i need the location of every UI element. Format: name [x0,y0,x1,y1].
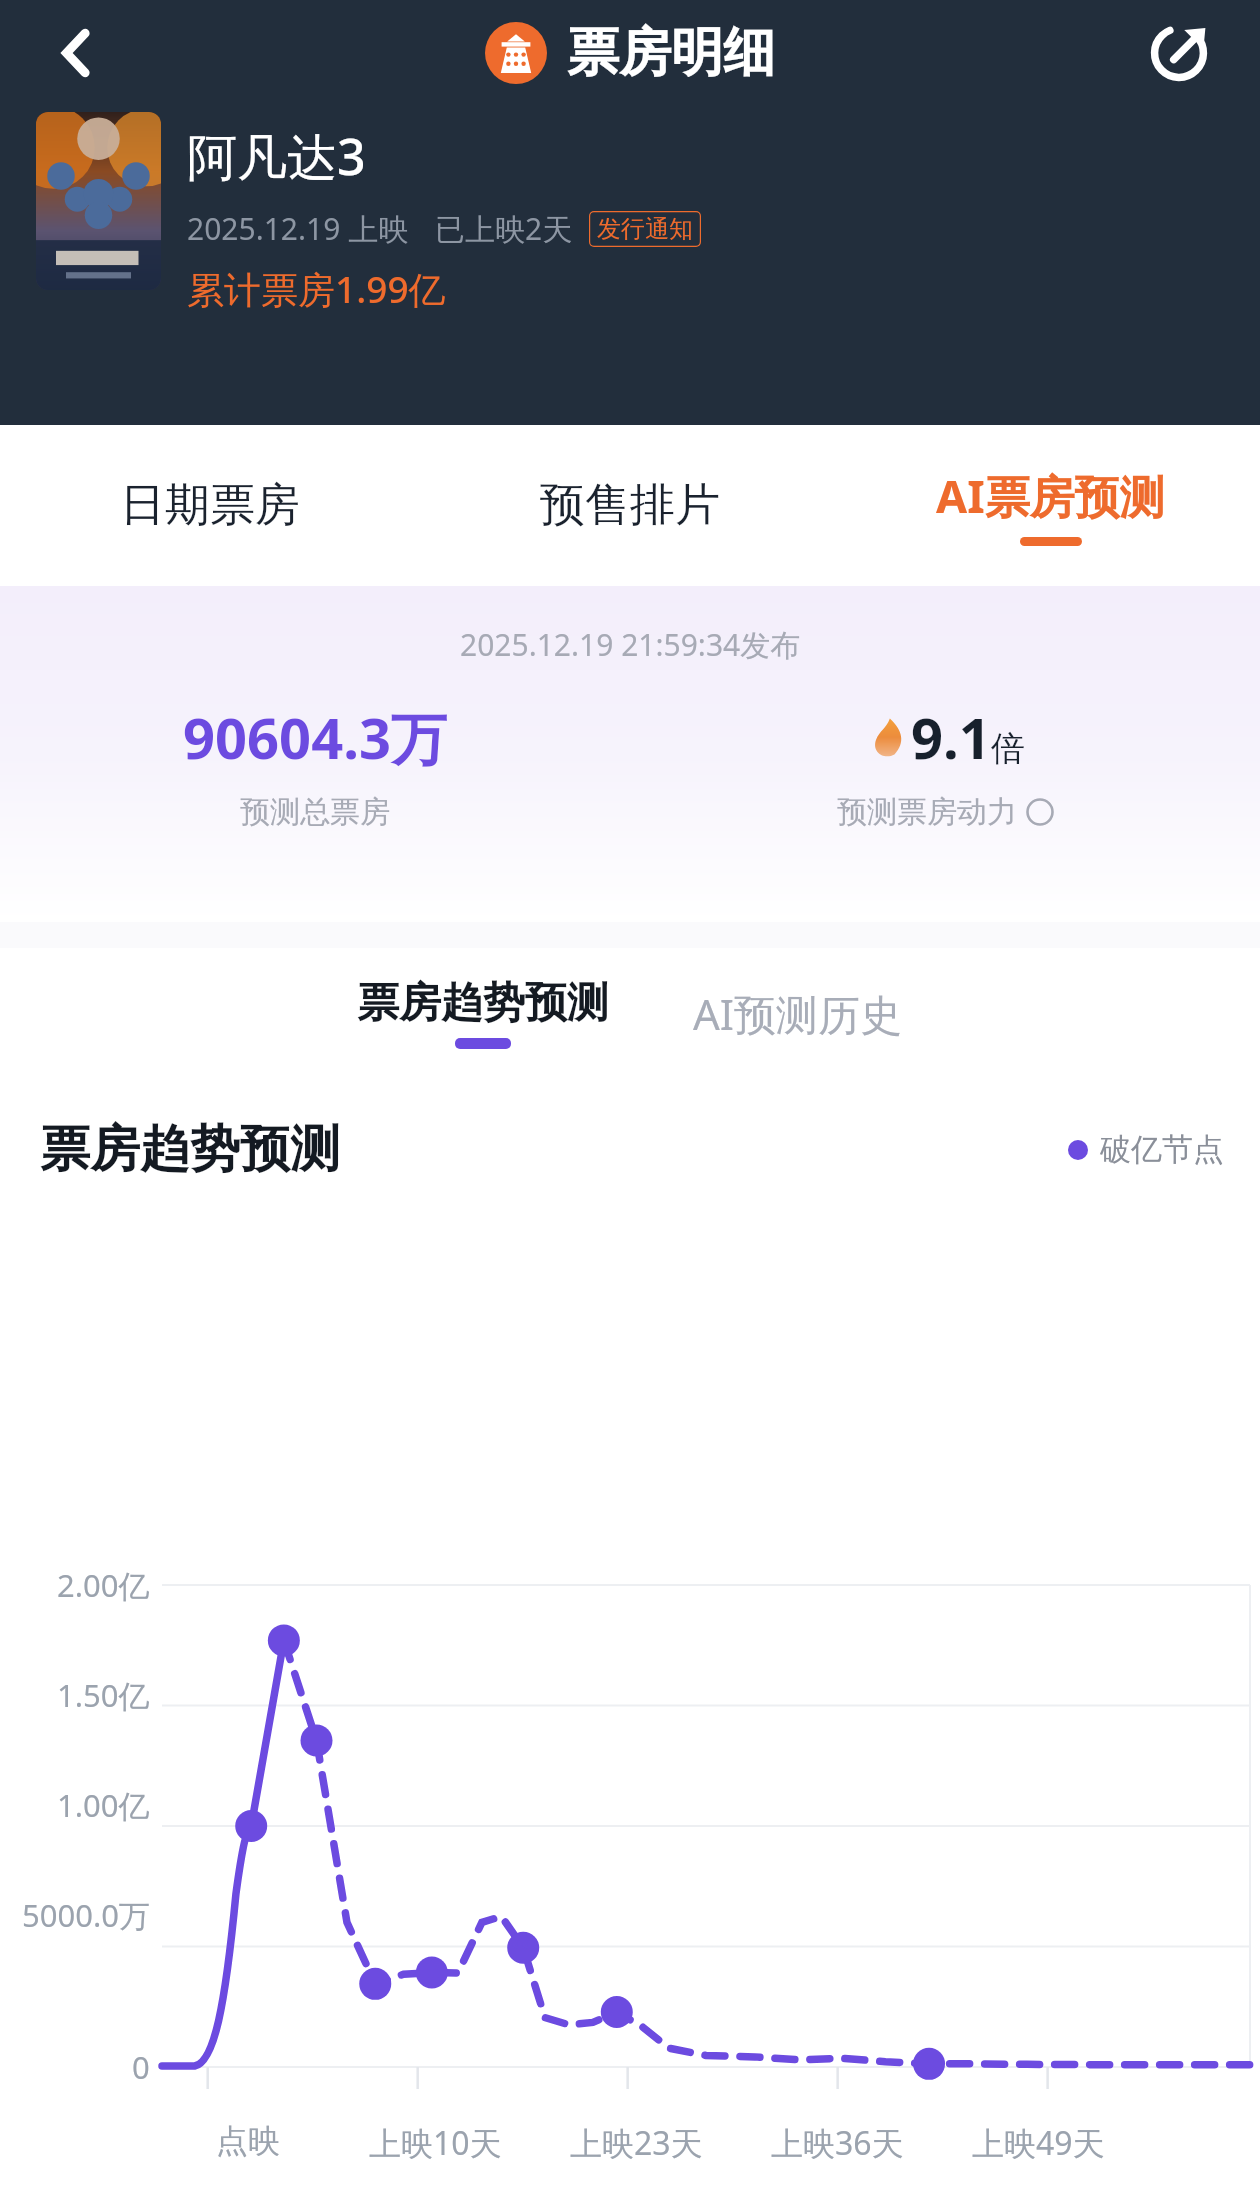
staticText: 90604.3万 [183,699,447,775]
staticText: 上映10天 [369,2121,502,2165]
button[interactable]: AI票房预测 [840,425,1260,586]
staticText: 日期票房 [120,477,300,534]
staticText: 票房趋势预测 [357,977,609,1030]
staticText: 预售排片 [540,477,720,534]
staticText: 2025.12.19 21:59:34发布 [460,624,801,665]
button[interactable]: 票房趋势预测 [343,969,623,1057]
staticText: AI预测历史 [693,985,903,1042]
staticText: 票房趋势预测 [40,1118,340,1181]
staticText: 5000.0万 [22,1894,150,1936]
staticText: 上映49天 [972,2121,1105,2165]
button[interactable]: Back [22,0,132,105]
staticText: 票房明细 [567,20,775,86]
staticText: 1.50亿 [57,1674,150,1716]
staticText: 上映36天 [771,2121,904,2165]
staticText: 倍 [991,727,1025,770]
button[interactable]: 发行通知 [597,214,693,244]
button[interactable]: 预售排片 [420,425,840,586]
staticText: 破亿节点 [1100,1130,1224,1169]
button[interactable]: AI预测历史 [679,977,917,1050]
staticText: 上映23天 [570,2121,703,2165]
staticText: 阿凡达3 [187,122,366,190]
staticText: 0 [132,2046,150,2088]
staticText: 点映 [216,2121,280,2161]
staticText: 1.00亿 [57,1784,150,1826]
staticText: 预测票房动力 [837,793,1017,831]
staticText: AI票房预测 [936,465,1165,526]
staticText: 2025.12.19 上映 [187,208,409,249]
button[interactable]: 破亿节点 [1068,1130,1224,1169]
staticText: 预测总票房 [240,793,390,831]
button[interactable]: Share [1124,0,1234,105]
staticText: 已上映2天 [435,208,573,249]
staticText: 9.1 [911,699,991,775]
staticText: 发行通知 [597,214,693,244]
button[interactable] [36,112,161,290]
staticText: 累计票房1.99亿 [187,263,446,314]
staticText: 2.00亿 [57,1564,150,1606]
button[interactable]: 日期票房 [0,425,420,586]
